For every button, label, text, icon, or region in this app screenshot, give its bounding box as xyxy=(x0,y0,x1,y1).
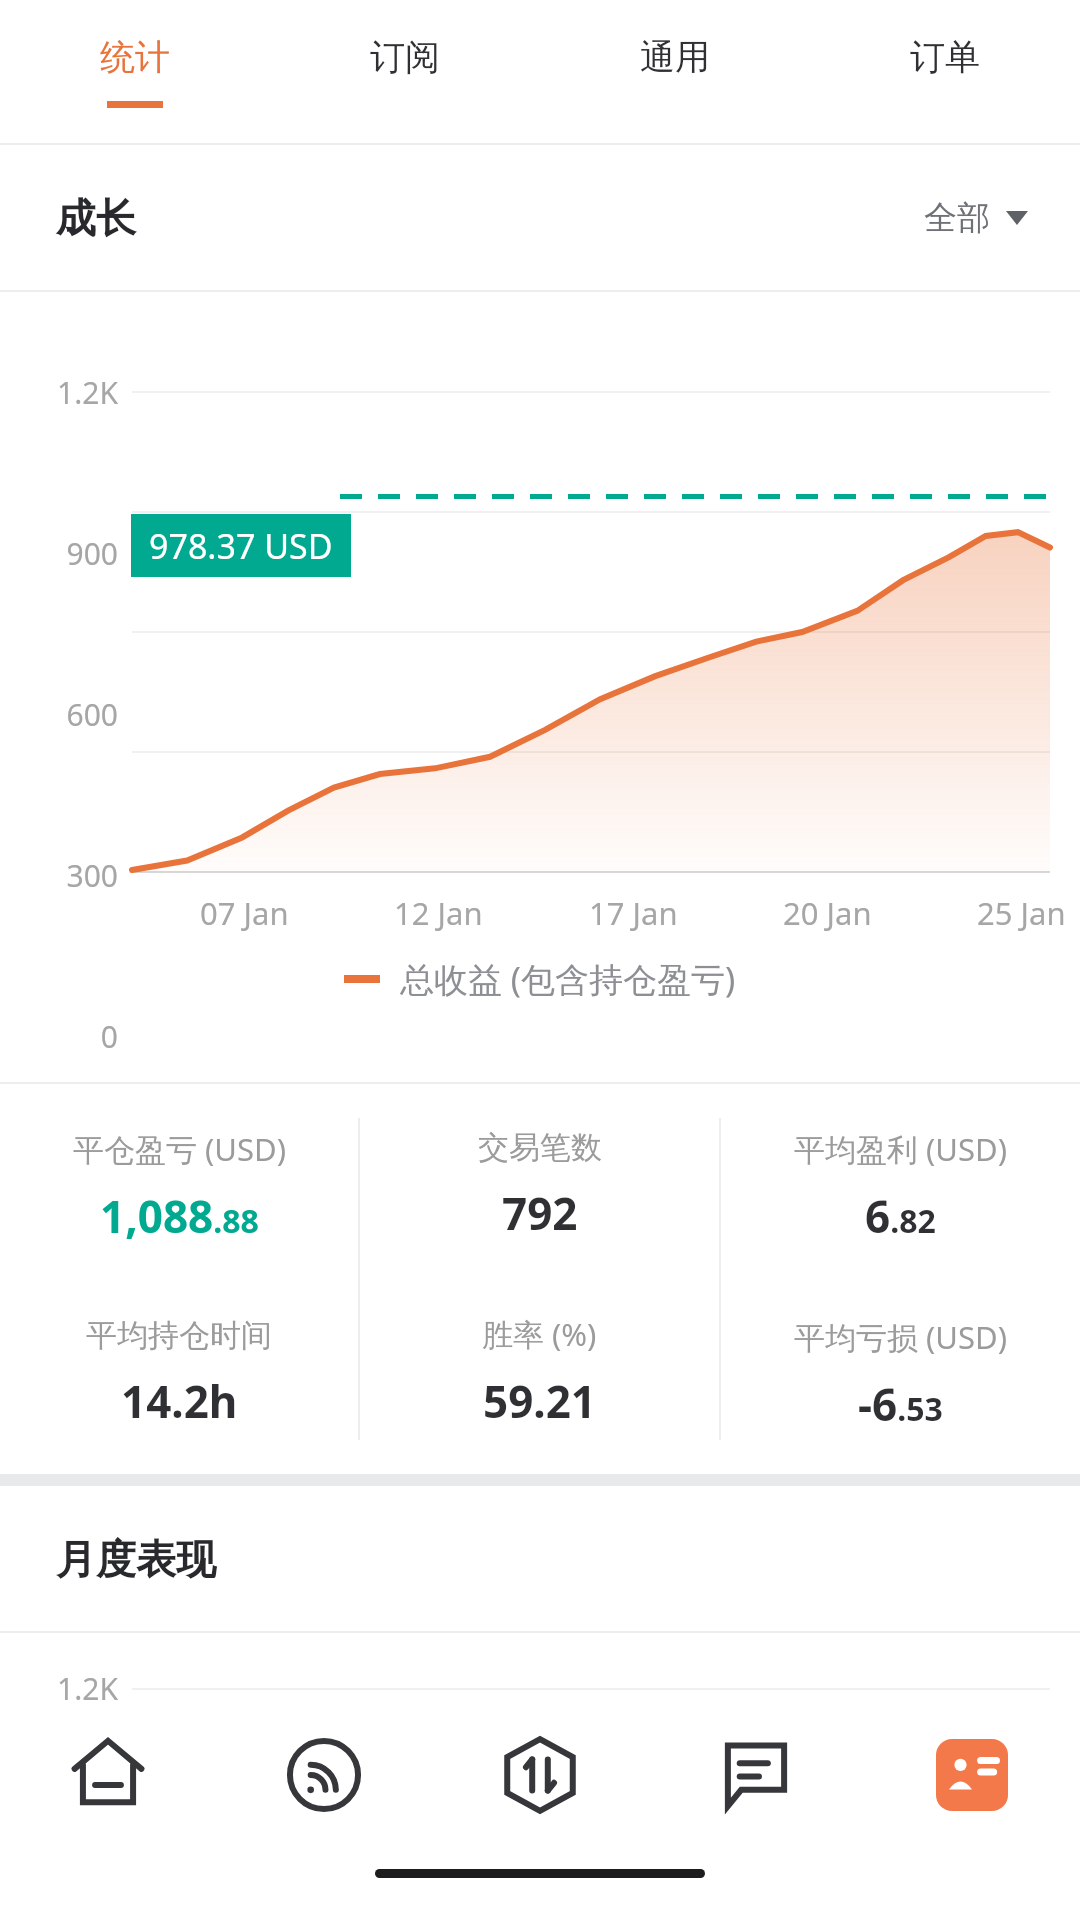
button[interactable]: Profile xyxy=(864,1710,1080,1840)
staticText: 900 xyxy=(0,533,118,574)
staticText: 订单 xyxy=(910,35,980,79)
staticText: 300 xyxy=(0,855,118,896)
staticText: 900 xyxy=(0,1761,118,1802)
staticText: 月度表现 xyxy=(56,1534,216,1584)
staticText: 成长 xyxy=(56,193,136,243)
button[interactable]: 统计 xyxy=(0,0,270,143)
button[interactable]: Home xyxy=(0,1710,216,1840)
staticText: 25 Jan xyxy=(977,892,1066,934)
button[interactable]: Trade xyxy=(432,1710,648,1840)
staticText: 0 xyxy=(0,1016,118,1057)
staticText: 59.21 xyxy=(483,1371,597,1431)
button[interactable]: 订单 xyxy=(810,0,1080,143)
staticText: 14.2h xyxy=(121,1371,238,1431)
staticText: 通用 xyxy=(640,35,710,79)
staticText: 平仓盈亏 (USD) xyxy=(73,1128,286,1170)
button[interactable]: 通用 xyxy=(540,0,810,143)
staticText: 平均亏损 (USD) xyxy=(794,1316,1007,1358)
staticText: 全部 xyxy=(924,197,990,239)
button[interactable]: Feed xyxy=(216,1710,432,1840)
staticText: 20 Jan xyxy=(783,892,872,934)
staticText: 792 xyxy=(502,1183,578,1243)
staticText: 总收益 (包含持仓盈亏) xyxy=(400,956,736,1002)
staticText: 平均持仓时间 xyxy=(86,1316,272,1355)
staticText: 1.2K xyxy=(0,372,118,413)
button[interactable]: 全部 xyxy=(912,183,1040,253)
button[interactable]: Messages xyxy=(648,1710,864,1840)
staticText: 1.2K xyxy=(0,1668,118,1709)
staticText: 6.82 xyxy=(865,1186,936,1246)
staticText: 600 xyxy=(0,694,118,735)
staticText: 统计 xyxy=(100,35,170,79)
staticText: 978.37 USD xyxy=(149,523,333,569)
staticText: 胜率 (%) xyxy=(482,1313,597,1355)
staticText: 交易笔数 xyxy=(478,1128,602,1167)
staticText: 1,088.88 xyxy=(100,1186,259,1246)
staticText: 07 Jan xyxy=(200,892,289,934)
staticText: 12 Jan xyxy=(394,892,483,934)
staticText: 平均盈利 (USD) xyxy=(794,1128,1007,1170)
staticText: -6.53 xyxy=(858,1374,943,1434)
staticText: 订阅 xyxy=(370,35,440,79)
staticText: 17 Jan xyxy=(589,892,678,934)
button[interactable]: 订阅 xyxy=(270,0,540,143)
